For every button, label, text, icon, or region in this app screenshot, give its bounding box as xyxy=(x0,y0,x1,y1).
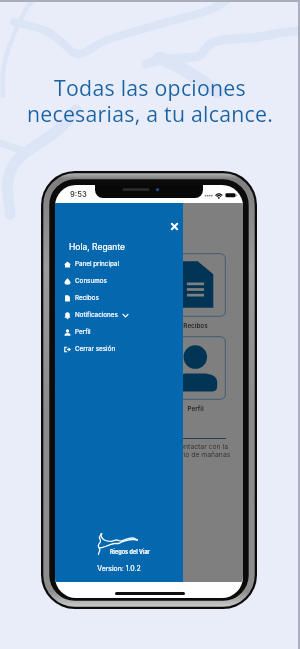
button[interactable]: Cerrar menu xyxy=(168,220,181,233)
button[interactable]: Perfil xyxy=(55,324,183,340)
button[interactable] xyxy=(73,253,134,317)
staticText: necesarias, a tu alcance. xyxy=(0,99,300,128)
button[interactable] xyxy=(165,336,226,400)
staticText: Version: 1.0.2 xyxy=(55,564,183,572)
button[interactable]: Recibos xyxy=(55,290,183,306)
staticText: Consumos xyxy=(75,277,107,285)
staticText: Recibos xyxy=(75,294,99,302)
staticText: Perfil xyxy=(165,405,226,413)
button[interactable] xyxy=(73,336,134,400)
button[interactable]: Consumos xyxy=(55,273,183,289)
staticText: Todas las opciones xyxy=(0,73,300,102)
staticText: Consumos xyxy=(73,322,134,330)
button[interactable]: Panel principal xyxy=(55,256,183,272)
staticText: oficina de Riegos del Viar en horario de… xyxy=(73,450,231,458)
button[interactable]: Notificaciones xyxy=(55,307,183,323)
staticText: Hola, Regante xyxy=(69,242,126,252)
staticText: Riegos del Viar xyxy=(110,549,150,556)
staticText: Notificaciones xyxy=(75,311,118,319)
staticText: Panel principal xyxy=(75,260,119,268)
staticText: Para cualquier consulta puedes contactar… xyxy=(73,442,228,450)
staticText: Recibos xyxy=(165,322,226,330)
staticText: Cerrar sesión xyxy=(75,345,116,353)
staticText: Perfil xyxy=(75,328,91,336)
staticText: 9:53 xyxy=(70,190,87,199)
button[interactable]: Cerrar sesión xyxy=(55,341,183,357)
button[interactable] xyxy=(165,253,226,317)
